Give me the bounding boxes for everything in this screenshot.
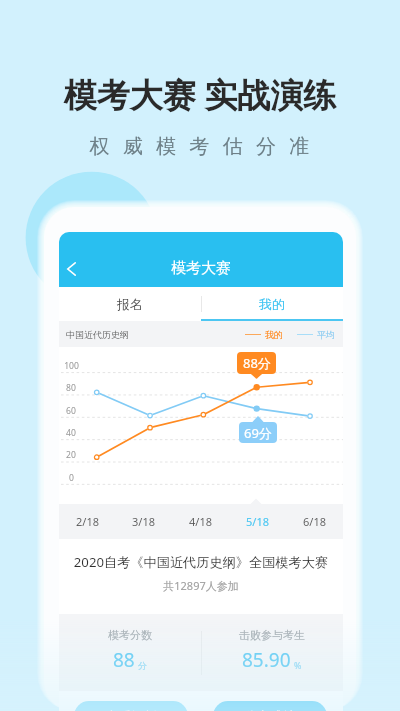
button[interactable]: 2/18 xyxy=(59,503,115,539)
staticText: 20 xyxy=(66,449,76,461)
staticText: 分 xyxy=(138,660,147,671)
staticText: 88 xyxy=(113,647,135,673)
staticText: 88分 xyxy=(243,354,271,372)
staticText: 模考大赛 实战演练 xyxy=(0,72,400,117)
staticText: 击败参与考生 xyxy=(239,628,305,642)
button[interactable]: 报名 xyxy=(59,287,201,321)
button[interactable]: 查看解析 xyxy=(74,701,188,711)
button[interactable]: 我的 xyxy=(201,287,343,321)
staticText: 100 xyxy=(64,360,79,372)
staticText: 80 xyxy=(66,382,76,394)
staticText: 平均 xyxy=(317,329,335,340)
staticText: 中国近代历史纲 xyxy=(66,329,129,340)
staticText: 6/18 xyxy=(303,514,326,529)
staticText: 3/18 xyxy=(132,514,155,529)
button[interactable]: 4/18 xyxy=(172,503,229,539)
button[interactable]: 3/18 xyxy=(115,503,172,539)
staticText: 5/18 xyxy=(246,514,269,529)
staticText: 2020自考《中国近代历史纲》全国模考大赛 xyxy=(59,553,343,571)
staticText: 2/18 xyxy=(76,514,99,529)
staticText: 85.90 xyxy=(242,647,291,673)
staticText: 我的 xyxy=(265,329,283,340)
staticText: 模考大赛 xyxy=(59,259,343,278)
button[interactable]: Back xyxy=(59,255,85,283)
staticText: 共12897人参加 xyxy=(59,578,343,593)
staticText: 报名 xyxy=(117,296,143,312)
staticText: 权威模考估分准 xyxy=(6,134,400,159)
staticText: 4/18 xyxy=(189,514,212,529)
button[interactable]: 分享成绩 xyxy=(213,701,327,711)
staticText: 0 xyxy=(69,472,74,484)
staticText: 40 xyxy=(66,427,76,439)
staticText: 我的 xyxy=(259,296,285,312)
button[interactable]: 5/18 xyxy=(229,503,286,539)
staticText: 分享成绩 xyxy=(244,708,296,711)
button[interactable]: 6/18 xyxy=(286,503,343,539)
staticText: % xyxy=(294,659,302,671)
staticText: 模考分数 xyxy=(108,628,152,642)
staticText: 60 xyxy=(66,405,76,417)
staticText: 查看解析 xyxy=(105,708,157,711)
staticText: 69分 xyxy=(244,424,272,442)
